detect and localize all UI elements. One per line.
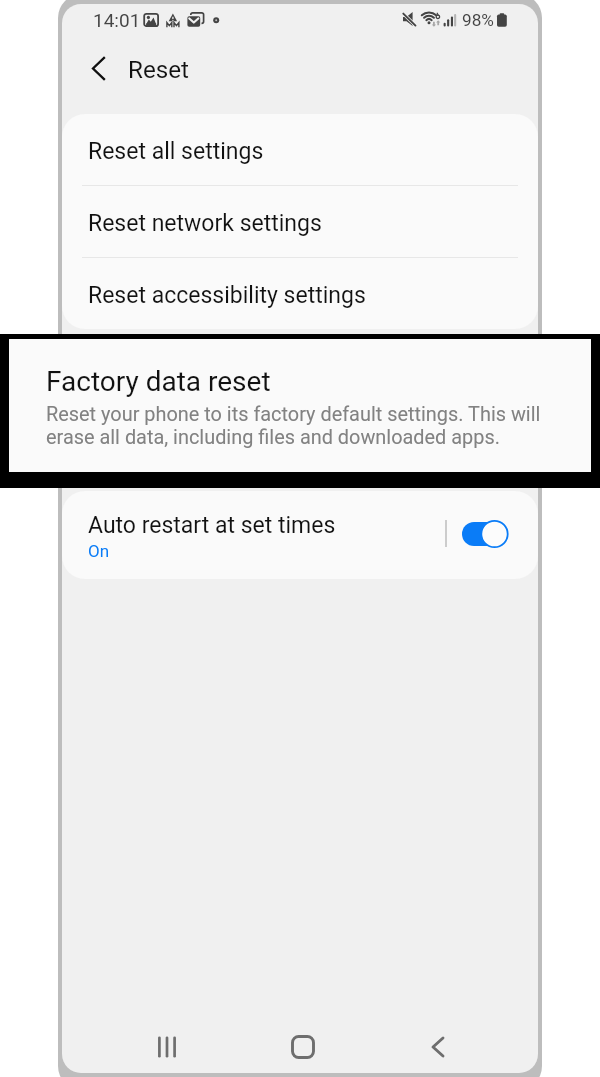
staticText: Reset network settings [88,210,322,237]
button[interactable]: Recent apps [135,1021,199,1073]
button[interactable]: Auto restart at set times [62,491,538,579]
staticText: 98% [462,10,494,30]
button[interactable]: Back [406,1021,470,1073]
staticText: Factory data reset [46,365,271,398]
staticText: Factory data reset [90,359,275,386]
staticText: Reset your phone to its factory default … [46,403,554,449]
staticText: 14:01 [93,9,141,31]
button[interactable]: Factory data reset [62,337,538,485]
button[interactable]: Factory data reset [0,334,600,488]
button[interactable]: Reset all settings [62,114,538,185]
staticText: Reset all settings [88,138,264,165]
staticText: Reset your phone to its factory default … [90,392,495,430]
staticText: Reset accessibility settings [88,282,366,309]
button[interactable]: Reset accessibility settings [62,258,538,329]
button[interactable]: Home [271,1021,335,1073]
button[interactable]: Navigate up [77,47,119,89]
button[interactable]: Auto restart at set times toggle [462,519,510,549]
staticText: On [88,541,110,561]
staticText: Reset [128,56,189,84]
staticText: Auto restart at set times [88,512,336,539]
button[interactable]: Reset network settings [62,186,538,257]
